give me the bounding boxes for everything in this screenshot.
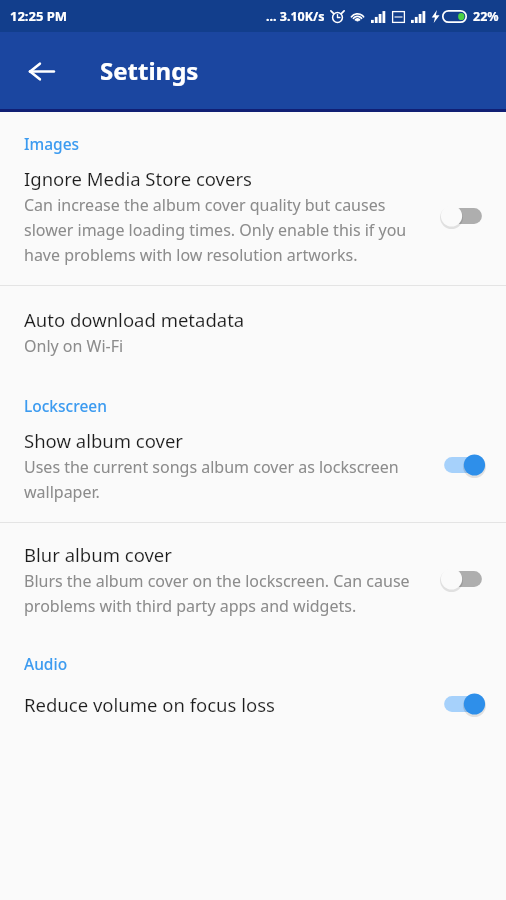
staticText: Auto download metadata [24, 307, 245, 332]
button[interactable]: Switch off [436, 561, 490, 597]
staticText: Audio [24, 653, 68, 674]
button[interactable]: Ignore Media Store covers [0, 154, 506, 285]
staticText: Blur album cover [24, 542, 172, 567]
button[interactable]: Reduce volume on focus loss [0, 674, 506, 742]
staticText: Show album cover [24, 428, 184, 453]
staticText: 22% [473, 8, 499, 25]
staticText: Only on Wi-Fi [24, 335, 124, 357]
button[interactable]: Auto download metadata [0, 286, 506, 377]
staticText: Settings [100, 54, 199, 87]
staticText: 12:25 PM [10, 7, 68, 25]
staticText: Ignore Media Store covers [24, 166, 252, 191]
staticText: Blurs the album cover on the lockscreen.… [24, 570, 424, 616]
staticText: Uses the current songs album cover as lo… [24, 456, 424, 502]
button[interactable]: Switch on [436, 447, 490, 483]
staticText: Can increase the album cover quality but… [24, 194, 424, 265]
button[interactable]: Blur album cover [0, 523, 506, 636]
button[interactable]: Show album cover [0, 416, 506, 522]
staticText: Images [24, 133, 80, 154]
button[interactable]: Switch off [436, 198, 490, 234]
staticText: ... 3.10K/s [266, 8, 325, 25]
button[interactable]: Back [17, 47, 65, 95]
staticText: Reduce volume on focus loss [24, 692, 275, 717]
staticText: Lockscreen [24, 395, 107, 416]
button[interactable]: Switch on [436, 686, 490, 722]
